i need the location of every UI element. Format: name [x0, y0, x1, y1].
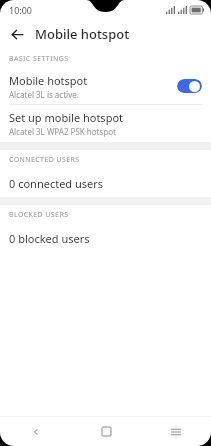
button[interactable]: Back	[5, 22, 29, 46]
button[interactable]: Recent apps	[141, 417, 211, 446]
button[interactable]: Set up mobile hotspot	[0, 105, 211, 142]
staticText: CONNECTED USERS	[9, 155, 80, 165]
button[interactable]: Home	[71, 417, 141, 446]
staticText: Mobile hotspot	[35, 25, 130, 43]
button[interactable]: Mobile hotspot toggle	[177, 79, 202, 93]
staticText: 0 connected users	[9, 176, 104, 191]
staticText: BLOCKED USERS	[9, 210, 69, 220]
staticText: BASIC SETTINGS	[9, 54, 69, 64]
button[interactable]: Back	[0, 417, 71, 446]
staticText: Alcatel 3L WPA2 PSK hotspot	[9, 126, 116, 137]
button[interactable]: Mobile hotspot	[0, 68, 211, 104]
staticText: 10:00	[9, 4, 33, 16]
staticText: Set up mobile hotspot	[9, 110, 124, 125]
staticText: 0 blocked users	[9, 231, 90, 246]
staticText: Alcatel 3L is active.	[9, 89, 79, 100]
button[interactable]: 0 blocked users	[0, 224, 211, 252]
staticText: Mobile hotspot	[9, 73, 88, 88]
button[interactable]: 0 connected users	[0, 169, 211, 197]
